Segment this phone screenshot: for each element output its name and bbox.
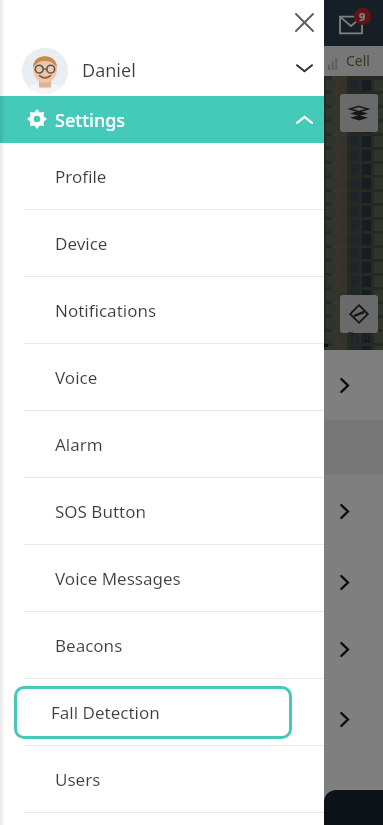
staticText: Voice Messages <box>55 567 181 590</box>
button[interactable]: Voice Messages <box>0 545 324 611</box>
button[interactable]: Expand profile <box>284 48 324 88</box>
button[interactable] <box>324 616 383 682</box>
staticText: Device <box>55 232 108 255</box>
button[interactable] <box>324 548 383 616</box>
staticText: Settings <box>55 108 126 133</box>
button[interactable]: Profile <box>0 143 324 209</box>
button[interactable] <box>324 682 383 756</box>
staticText: Terms <box>348 329 377 343</box>
button[interactable] <box>324 350 383 420</box>
staticText: Fall Detection <box>51 701 160 724</box>
staticText: Alarm <box>55 433 103 456</box>
button[interactable]: SOS Button <box>0 478 324 544</box>
button[interactable]: Device <box>0 210 324 276</box>
staticText: 9 <box>359 9 366 24</box>
staticText: SOS Button <box>55 500 146 523</box>
button[interactable]: Close <box>286 4 322 40</box>
button[interactable]: Settings <box>0 96 324 143</box>
button[interactable]: Alarm <box>0 411 324 477</box>
button[interactable]: Recenter <box>340 295 378 333</box>
staticText: Voice <box>55 366 98 389</box>
button[interactable]: Notifications <box>0 277 324 343</box>
staticText: Notifications <box>55 299 157 322</box>
button[interactable]: Beacons <box>0 612 324 678</box>
button[interactable] <box>324 475 383 548</box>
button[interactable]: Map layers <box>340 94 378 132</box>
button[interactable]: Users <box>0 746 324 812</box>
staticText: Cell <box>346 51 370 70</box>
staticText: Profile <box>55 165 107 188</box>
staticText: Users <box>55 768 101 791</box>
staticText: Beacons <box>55 634 123 657</box>
button[interactable]: Voice <box>0 344 324 410</box>
button[interactable]: Fall Detection <box>0 679 324 745</box>
staticText: Daniel <box>82 58 136 83</box>
